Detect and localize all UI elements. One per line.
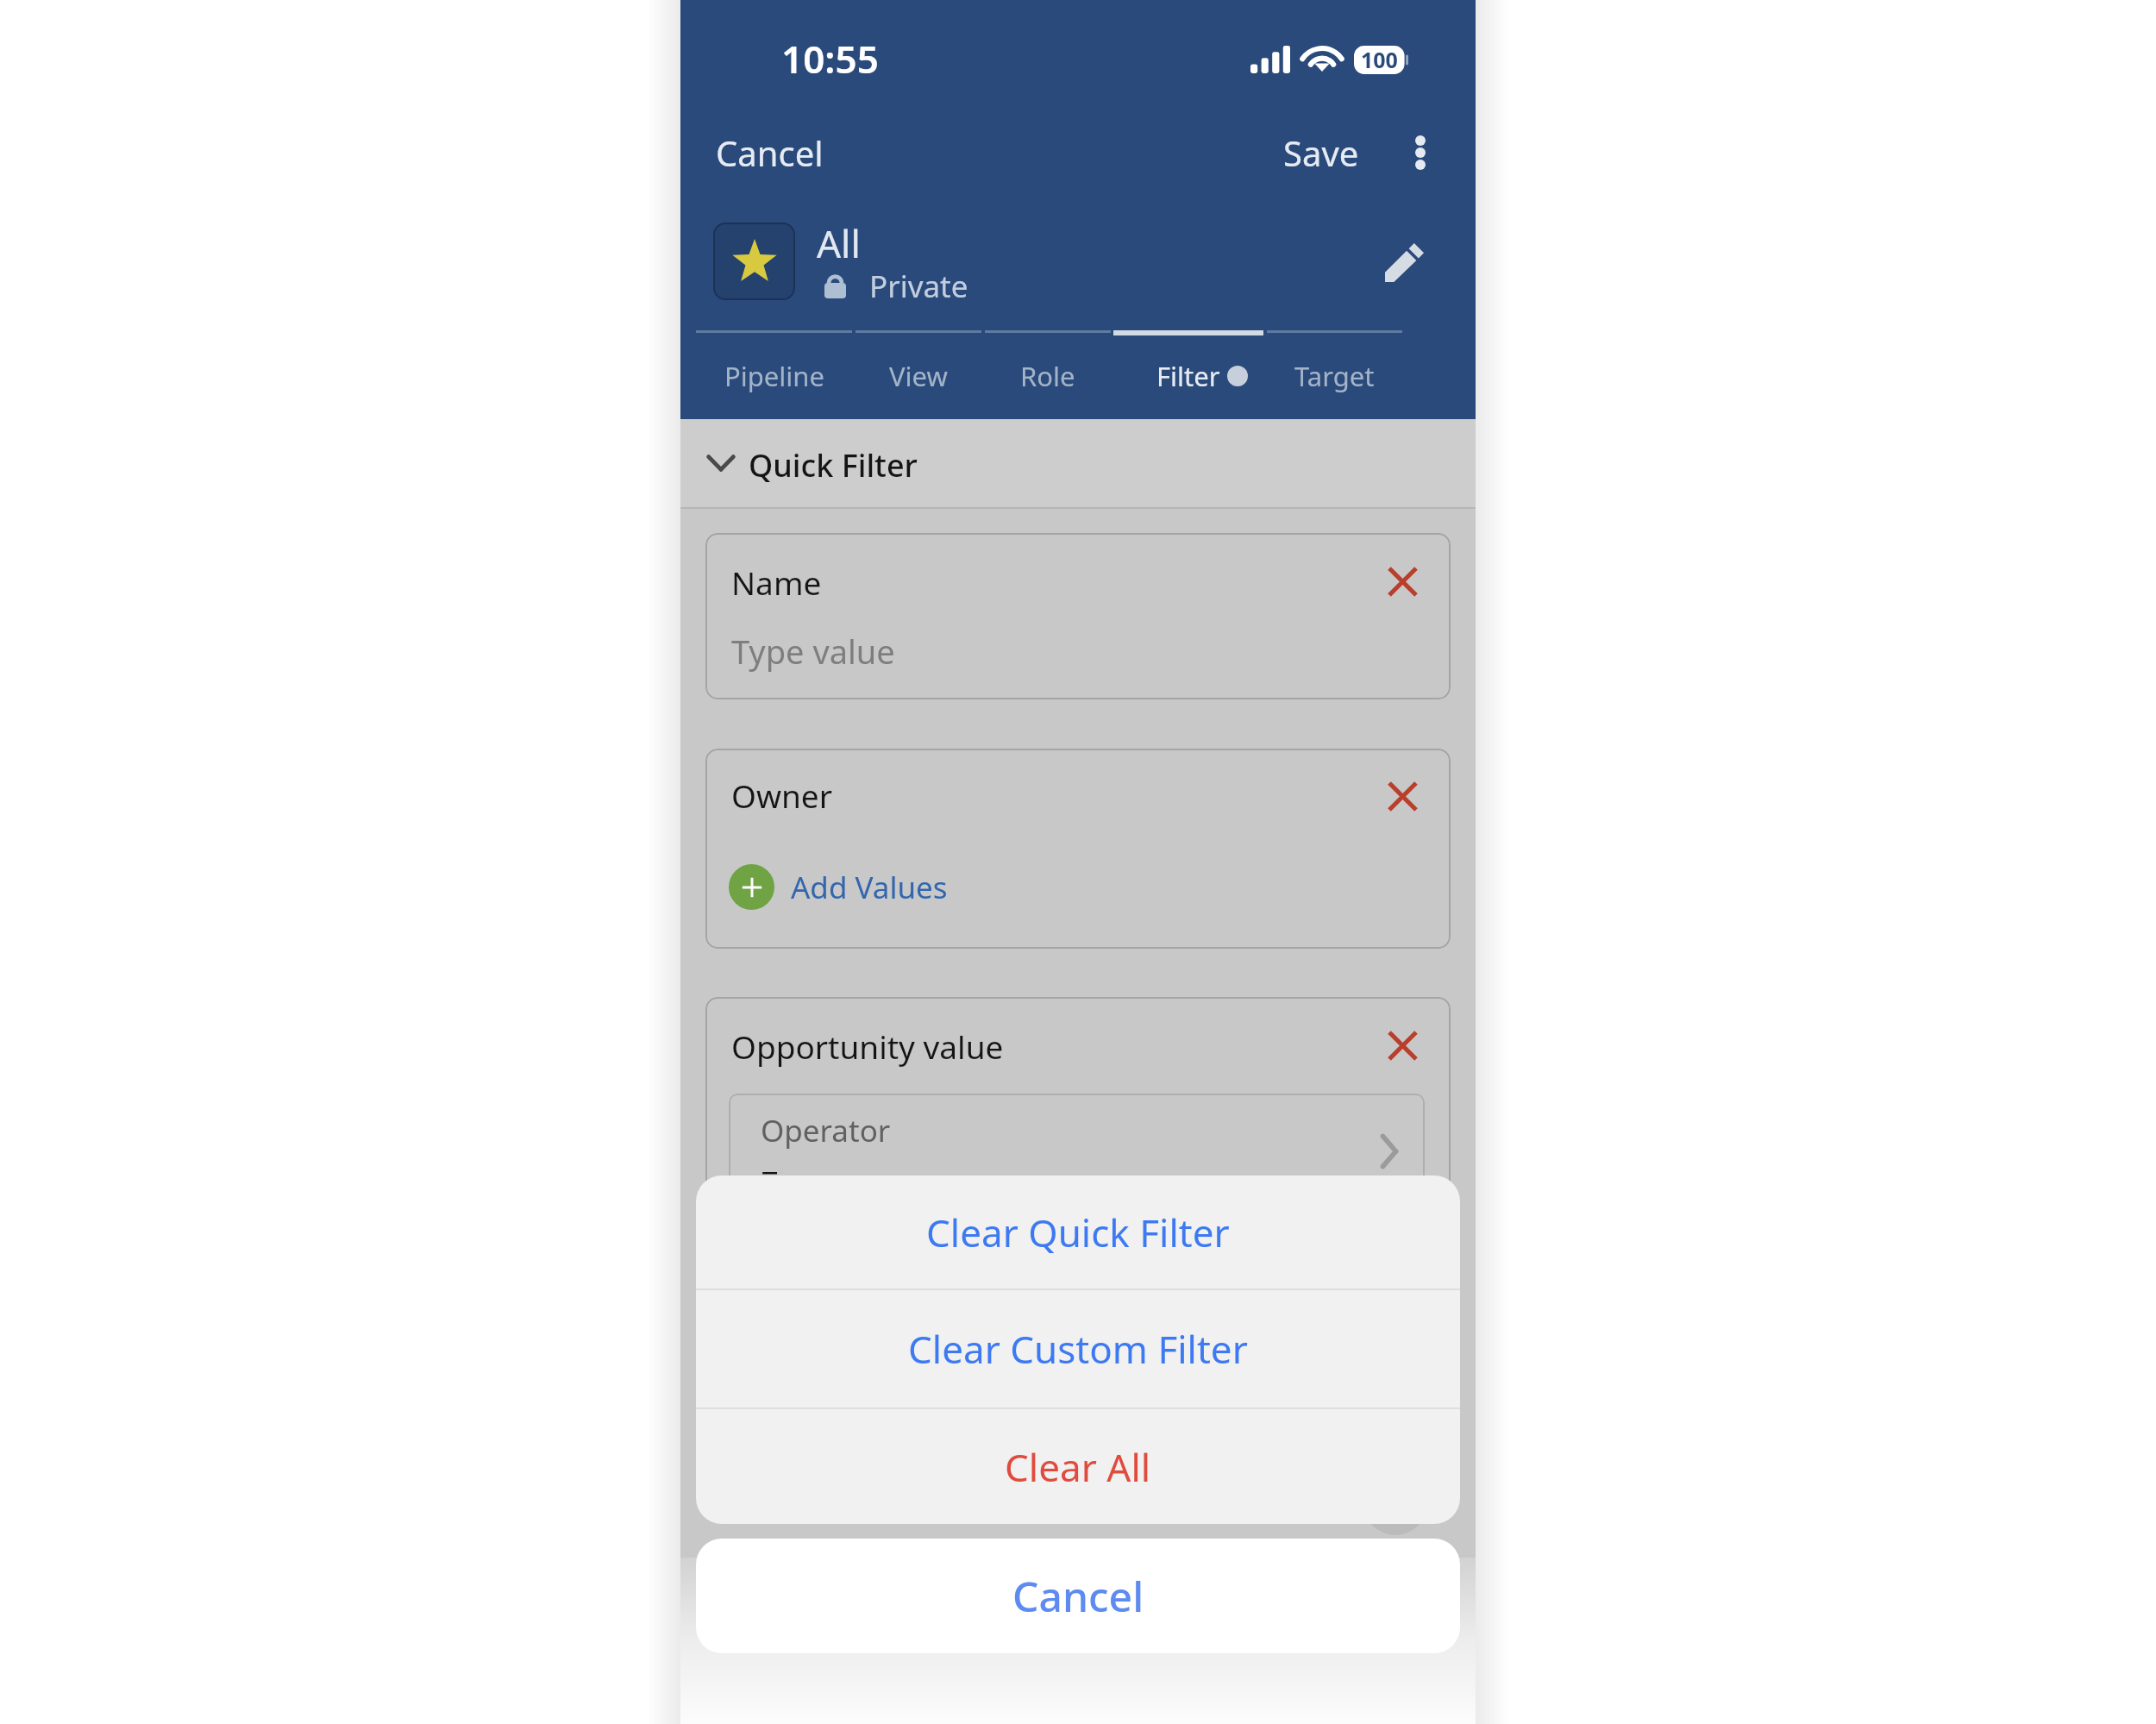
staticText: Target bbox=[1294, 358, 1375, 394]
button[interactable]: Clear Quick Filter bbox=[696, 1175, 1460, 1288]
staticText: Clear Quick Filter bbox=[926, 1207, 1230, 1258]
staticText: Opportunity value bbox=[731, 1025, 1004, 1068]
staticText: Type value bbox=[731, 629, 895, 674]
button[interactable]: Quick Filter bbox=[680, 419, 1476, 507]
staticText: Cancel bbox=[1012, 1568, 1144, 1624]
staticText: Private bbox=[869, 266, 968, 307]
button[interactable]: Cancel bbox=[696, 1539, 1460, 1653]
button[interactable]: Remove Owner filter bbox=[1368, 762, 1437, 831]
staticText: 100 bbox=[1361, 45, 1398, 74]
button[interactable]: Add Values bbox=[724, 859, 953, 915]
button[interactable]: Pipeline bbox=[696, 330, 852, 419]
staticText: Clear All bbox=[1005, 1441, 1151, 1493]
button[interactable]: Remove Name filter bbox=[1368, 547, 1437, 616]
button[interactable]: Clear All bbox=[696, 1409, 1460, 1524]
button[interactable]: Edit bbox=[1371, 229, 1438, 296]
button[interactable]: Cancel bbox=[695, 116, 844, 190]
button[interactable]: Filter bbox=[1113, 330, 1263, 419]
staticText: Pipeline bbox=[724, 358, 824, 394]
staticText: Operator bbox=[761, 1110, 891, 1151]
button[interactable]: Operator bbox=[729, 1094, 1425, 1206]
button[interactable]: Remove Opportunity value filter bbox=[1368, 1011, 1437, 1080]
button[interactable]: Name bbox=[705, 533, 1451, 699]
button[interactable]: View bbox=[856, 330, 981, 419]
staticText: Quick Filter bbox=[749, 444, 918, 486]
button[interactable]: More options bbox=[1390, 122, 1451, 183]
button[interactable]: Owner bbox=[705, 749, 1451, 949]
button[interactable]: Add bbox=[1363, 1470, 1428, 1535]
staticText: Owner bbox=[731, 774, 832, 817]
staticText: 10:55 bbox=[781, 33, 879, 85]
button[interactable]: Role bbox=[985, 330, 1111, 419]
staticText: View bbox=[889, 358, 948, 394]
button[interactable]: Save bbox=[1263, 116, 1380, 190]
staticText: Role bbox=[1020, 358, 1075, 394]
staticText: Add Values bbox=[791, 867, 948, 908]
staticText: All bbox=[817, 217, 861, 269]
button[interactable]: Clear Custom Filter bbox=[696, 1290, 1460, 1407]
button[interactable]: Opportunity value bbox=[705, 997, 1451, 1213]
staticText: Filter bbox=[1156, 358, 1220, 394]
button[interactable]: Target bbox=[1267, 330, 1402, 419]
staticText: Clear Custom Filter bbox=[908, 1323, 1248, 1375]
staticText: Save bbox=[1283, 129, 1359, 176]
button[interactable]: Favorite bbox=[713, 223, 795, 300]
staticText: = bbox=[761, 1153, 780, 1196]
staticText: Cancel bbox=[716, 129, 824, 176]
staticText: Name bbox=[731, 561, 822, 604]
